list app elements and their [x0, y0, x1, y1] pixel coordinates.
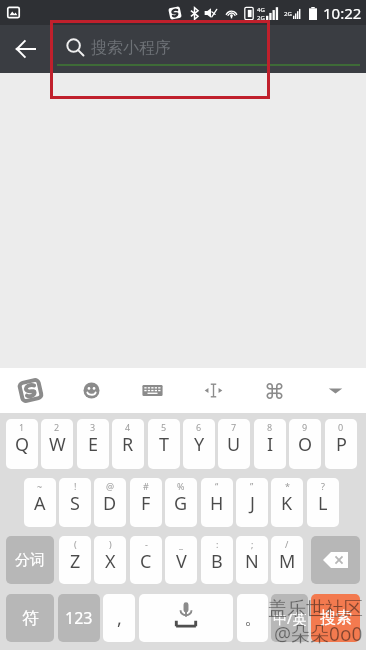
staticText: H	[210, 491, 224, 516]
button[interactable]: 1	[6, 419, 38, 469]
button[interactable]: 中/英	[271, 594, 308, 642]
staticText: 2G	[257, 14, 265, 20]
staticText: 分词	[15, 551, 45, 570]
staticText: /	[285, 538, 289, 550]
button[interactable]: ”	[236, 478, 268, 527]
staticText: 7	[231, 421, 237, 433]
button[interactable]: 6	[183, 419, 215, 469]
button[interactable]: 5	[148, 419, 180, 469]
staticText: 搜索小程序	[91, 38, 171, 58]
button[interactable]: /	[271, 536, 303, 584]
button[interactable]: ;	[236, 536, 268, 584]
button[interactable]: )	[94, 536, 126, 584]
button[interactable]: ~	[24, 478, 56, 527]
button[interactable]: *	[271, 478, 303, 527]
staticText: U	[227, 432, 241, 457]
staticText: 10:22	[323, 3, 362, 23]
staticText: V	[176, 549, 187, 574]
button[interactable]: 分词	[6, 536, 54, 584]
staticText: D	[103, 491, 117, 516]
staticText: (	[74, 538, 77, 550]
staticText: _	[179, 538, 183, 550]
staticText: )	[109, 538, 112, 550]
staticText: 4G	[257, 6, 265, 14]
button[interactable]: ?	[307, 478, 339, 527]
button[interactable]: Cursor	[183, 368, 244, 413]
staticText: F	[141, 491, 151, 516]
staticText: J	[250, 491, 255, 516]
staticText: A	[34, 491, 46, 516]
staticText: 9	[302, 421, 308, 433]
button[interactable]: 0	[325, 419, 357, 469]
staticText: ~	[37, 480, 43, 492]
button[interactable]: Back	[0, 25, 50, 73]
button[interactable]: Space	[139, 594, 233, 642]
button[interactable]: _	[165, 536, 197, 584]
staticText: W	[49, 432, 66, 457]
staticText: P	[336, 432, 347, 457]
staticText: T	[159, 432, 170, 457]
button[interactable]: !	[59, 478, 91, 527]
button[interactable]: 9	[289, 419, 321, 469]
button[interactable]: 。	[237, 594, 268, 642]
staticText: 8	[267, 421, 273, 433]
staticText: 0	[338, 421, 344, 433]
button[interactable]: (	[59, 536, 91, 584]
button[interactable]: 8	[254, 419, 286, 469]
staticText: -	[145, 538, 148, 550]
staticText: G	[174, 491, 188, 516]
staticText: L	[318, 491, 328, 516]
button[interactable]: 3	[77, 419, 109, 469]
staticText: %	[177, 480, 185, 492]
staticText: O	[298, 432, 313, 457]
button[interactable]: Input method	[0, 368, 61, 413]
staticText: Z	[70, 549, 81, 574]
staticText: @朵朵0o0	[274, 621, 363, 647]
button[interactable]: Hide keyboard	[305, 368, 366, 413]
staticText: :	[216, 538, 219, 550]
staticText: 1	[19, 421, 25, 433]
staticText: ;	[251, 538, 254, 550]
button[interactable]: ,	[103, 594, 135, 642]
button[interactable]: 4	[112, 419, 144, 469]
button[interactable]: 2	[41, 419, 73, 469]
staticText: Q	[15, 432, 30, 457]
button[interactable]: Backspace	[311, 536, 360, 584]
staticText: M	[279, 549, 296, 574]
staticText: 。	[244, 607, 262, 630]
staticText: 盖乐世社区	[268, 597, 363, 621]
staticText: 中/英	[273, 609, 307, 628]
button[interactable]: “	[201, 478, 233, 527]
button[interactable]: %	[165, 478, 197, 527]
button[interactable]: -	[130, 536, 162, 584]
button[interactable]: Emoji	[61, 368, 122, 413]
staticText: ”	[250, 480, 254, 492]
staticText: *	[285, 480, 290, 492]
staticText: #	[143, 480, 149, 492]
button[interactable]: 符	[6, 594, 54, 642]
staticText: 4	[125, 421, 131, 433]
staticText: I	[267, 432, 274, 457]
staticText: @	[106, 480, 115, 492]
staticText: B	[211, 549, 223, 574]
button[interactable]: Keyboard layout	[122, 368, 183, 413]
staticText: R	[122, 432, 134, 457]
button[interactable]: 7	[218, 419, 250, 469]
staticText: ⌘	[264, 380, 285, 401]
staticText: !	[74, 480, 77, 492]
staticText: K	[281, 491, 293, 516]
staticText: N	[245, 549, 259, 574]
button[interactable]: Shortcuts	[244, 368, 305, 413]
staticText: “	[215, 480, 219, 492]
staticText: Y	[194, 432, 205, 457]
button[interactable]: 123	[58, 594, 100, 642]
button[interactable]: 搜索	[311, 594, 360, 642]
staticText: ,	[117, 606, 122, 631]
button[interactable]: :	[201, 536, 233, 584]
button[interactable]: @	[94, 478, 126, 527]
staticText: 2G	[284, 10, 292, 18]
staticText: ?	[321, 480, 325, 492]
staticText: 2	[54, 421, 60, 433]
button[interactable]: #	[130, 478, 162, 527]
staticText: X	[105, 549, 116, 574]
